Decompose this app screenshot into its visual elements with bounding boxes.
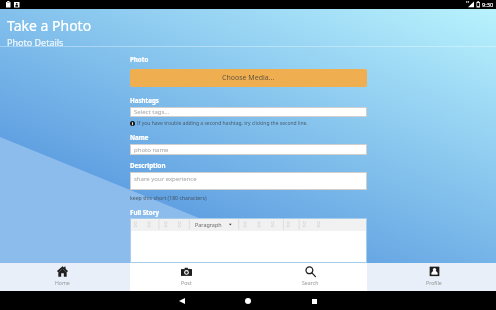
button[interactable]: Home [240,293,256,309]
button[interactable]: Search [248,263,372,291]
button[interactable]: Home [0,263,124,291]
staticText: Take a Photo [7,16,92,35]
button[interactable]: Select tags... [130,107,367,117]
staticText: Paragraph [195,221,222,228]
staticText: photo name [134,146,169,154]
staticText: If you have trouble adding a second hash… [137,120,308,127]
staticText: keep this short (180 characters) [130,194,207,201]
staticText: share your experience [134,175,197,183]
staticText: Home [55,279,70,286]
staticText: Hashtags [130,96,159,104]
staticText: Profile [426,279,442,286]
staticText: Full Story [130,208,159,216]
button[interactable] [130,231,367,263]
button[interactable]: Choose Media... [130,69,367,87]
staticText: Photo Details [7,36,64,48]
staticText: Photo [130,55,149,63]
button[interactable]: photo name [130,144,367,155]
staticText: Name [130,133,149,141]
button[interactable]: Back [174,293,190,309]
staticText: Description [130,161,166,169]
staticText: Select tags... [134,108,170,116]
staticText: Post [181,279,192,286]
button[interactable]: share your experience [130,172,367,190]
staticText: Search [302,279,319,286]
button[interactable]: Profile [372,263,496,291]
button[interactable]: Post [124,263,248,291]
staticText: Choose Media... [222,73,275,83]
button[interactable]: Recents [306,293,322,309]
staticText: 9:30 [482,1,494,9]
